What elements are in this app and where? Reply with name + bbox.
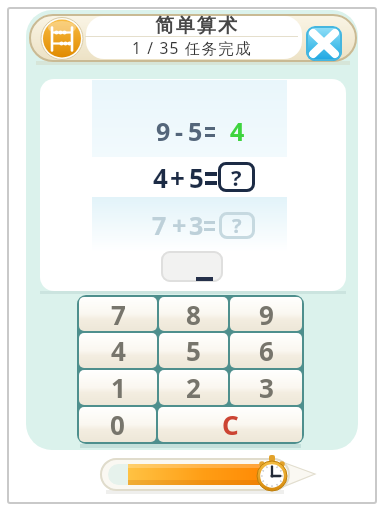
staticText: 3	[259, 370, 274, 405]
staticText: 7	[152, 208, 167, 236]
staticText: ?	[231, 162, 242, 192]
button[interactable]: 2	[159, 370, 228, 405]
button[interactable]	[161, 251, 223, 282]
button[interactable]: 7	[79, 297, 157, 331]
staticText: 4	[230, 114, 245, 142]
staticText: 4	[111, 333, 126, 368]
staticText: 5	[188, 114, 203, 142]
staticText: ?	[232, 212, 242, 239]
staticText: 2	[186, 370, 201, 405]
button[interactable]: 5	[159, 333, 228, 368]
staticText: 简单算术	[154, 14, 238, 36]
staticText: 5	[189, 160, 204, 188]
staticText: 1 / 35 任务完成	[132, 37, 252, 57]
button[interactable]: 1	[79, 370, 157, 405]
button[interactable]: 8	[159, 297, 228, 331]
staticText: 3	[189, 208, 204, 236]
staticText: 9	[259, 297, 274, 331]
staticText: 1	[111, 370, 126, 405]
button[interactable]: 9	[230, 297, 302, 331]
button[interactable]: 6	[230, 333, 302, 368]
staticText: +	[170, 160, 185, 188]
staticText: 5	[186, 333, 201, 368]
button[interactable]: 0	[79, 407, 156, 442]
button[interactable]: 4	[79, 333, 157, 368]
staticText: C	[222, 407, 239, 442]
staticText: -	[175, 114, 184, 142]
staticText: 9	[156, 114, 171, 142]
button[interactable]: 3	[230, 370, 302, 405]
staticText: +	[172, 208, 187, 236]
staticText: 8	[186, 297, 201, 331]
staticText: 0	[110, 407, 125, 442]
staticText: 6	[259, 333, 274, 368]
button[interactable]: C	[158, 407, 302, 442]
button[interactable]	[306, 26, 342, 61]
staticText: 4	[153, 160, 168, 188]
staticText: 7	[111, 297, 126, 331]
